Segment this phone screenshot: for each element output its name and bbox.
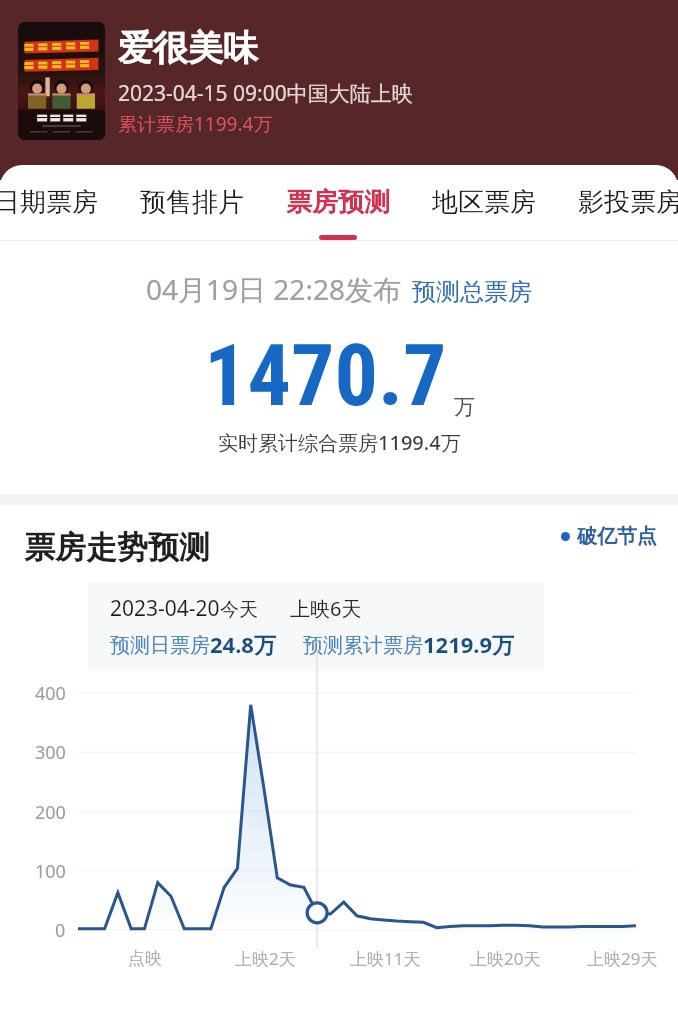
staticText: 2023-04-20 — [110, 594, 220, 623]
button[interactable]: 破亿节点 — [561, 524, 657, 549]
staticText: 0 — [55, 918, 66, 943]
staticText: 点映 — [128, 948, 162, 969]
staticText: 日期票房 — [0, 186, 98, 219]
staticText: 影投票房 — [578, 186, 678, 219]
staticText: 上映29天 — [587, 947, 658, 970]
staticText: 预售排片 — [140, 186, 244, 219]
button[interactable]: 电影海报 爱很美味 — [18, 22, 105, 140]
staticText: 300 — [35, 740, 66, 765]
button[interactable]: 预售排片 — [119, 165, 265, 241]
staticText: 上映6天 — [290, 595, 362, 622]
staticText: 200 — [35, 800, 66, 825]
button[interactable]: 地区票房 — [411, 165, 557, 241]
button[interactable]: 影投票房 — [557, 165, 678, 241]
staticText: 爱很美味 — [118, 26, 258, 70]
staticText: 票房走势预测 — [24, 528, 210, 567]
staticText: 预测累计票房 — [303, 633, 423, 658]
staticText: 1470.7 — [204, 325, 447, 426]
staticText: 1219.9万 — [423, 629, 515, 659]
staticText: 破亿节点 — [577, 524, 657, 549]
button[interactable]: 日期票房 — [0, 165, 119, 241]
staticText: 今天 — [220, 598, 258, 622]
staticText: 预测总票房 — [412, 277, 532, 307]
staticText: 上映2天 — [235, 947, 296, 970]
staticText: 万 — [454, 394, 475, 420]
staticText: 上映20天 — [470, 947, 541, 970]
staticText: 累计票房1199.4万 — [118, 111, 273, 137]
staticText: 400 — [35, 681, 66, 706]
staticText: 预测日票房 — [110, 633, 210, 658]
staticText: 票房预测 — [286, 186, 390, 219]
button[interactable]: 票房预测 — [265, 165, 411, 241]
staticText: 100 — [35, 859, 66, 884]
staticText: 04月19日 22:28发布 — [146, 270, 401, 308]
staticText: 上映11天 — [350, 947, 421, 970]
staticText: 地区票房 — [432, 186, 536, 219]
button[interactable]: 2023-04-20 — [88, 583, 544, 671]
staticText: 24.8万 — [210, 629, 276, 659]
staticText: 2023-04-15 09:00中国大陆上映 — [118, 79, 413, 108]
button[interactable]: 爱很美味 — [118, 26, 413, 137]
staticText: 实时累计综合票房1199.4万 — [218, 429, 461, 456]
